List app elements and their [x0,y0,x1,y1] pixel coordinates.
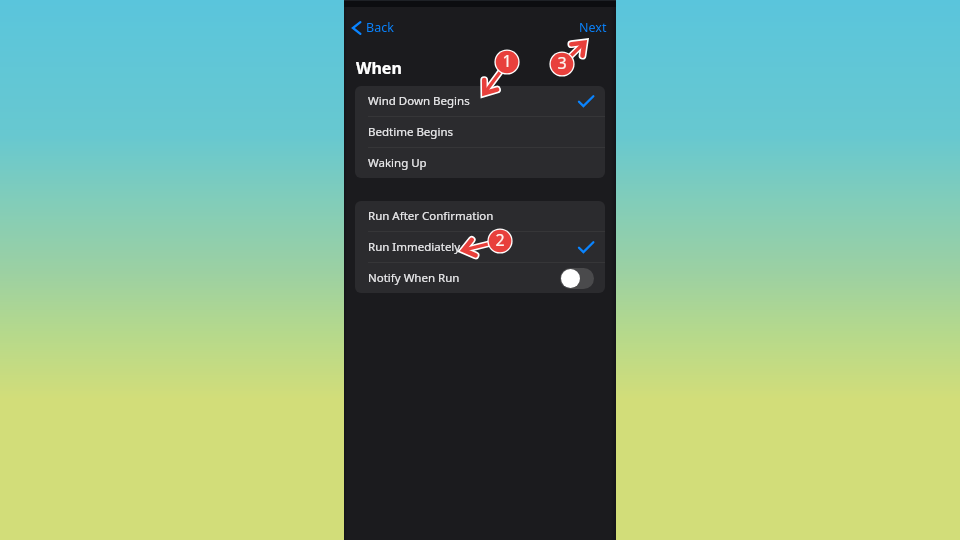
staticText: Wind Down Begins [368,93,470,109]
staticText: Run Immediately [368,239,461,255]
button[interactable]: Notify When Run toggle [560,268,594,289]
staticText: Notify When Run [368,270,460,286]
staticText: 3 [557,52,567,74]
button[interactable]: Bedtime Begins [355,117,605,147]
button[interactable]: Run Immediately [355,232,605,262]
button[interactable]: Run After Confirmation [355,201,605,231]
staticText: Back [366,19,394,36]
button[interactable]: Notify When Run [355,263,605,293]
button[interactable]: Step 2 [487,228,513,254]
button[interactable]: Back [349,15,397,40]
button[interactable]: Step 3 [549,51,575,77]
staticText: Bedtime Begins [368,124,453,140]
staticText: Run After Confirmation [368,208,494,224]
staticText: When [356,57,402,79]
button[interactable]: Next [570,14,616,41]
staticText: Next [579,19,607,36]
staticText: 1 [502,50,512,72]
staticText: 2 [495,229,505,251]
button[interactable]: Waking Up [355,148,605,178]
button[interactable]: Step 1 [494,49,520,75]
button[interactable]: Wind Down Begins [355,86,605,116]
staticText: Waking Up [368,155,427,171]
